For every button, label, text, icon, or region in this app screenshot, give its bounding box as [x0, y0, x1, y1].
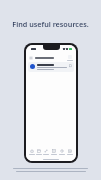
button[interactable]: Recent — [58, 149, 66, 155]
button[interactable]: Menu — [29, 56, 33, 60]
button[interactable]: Shared — [42, 149, 50, 155]
button[interactable]: Files — [35, 149, 42, 155]
button[interactable]: Open link — [28, 62, 74, 72]
button[interactable]: Home — [28, 149, 35, 155]
staticText: Find useful resources. — [6, 19, 95, 29]
button[interactable]: Open link — [69, 64, 72, 67]
button[interactable]: More — [66, 149, 74, 155]
button[interactable]: Starred — [50, 149, 58, 155]
button[interactable]: Account — [67, 55, 73, 61]
